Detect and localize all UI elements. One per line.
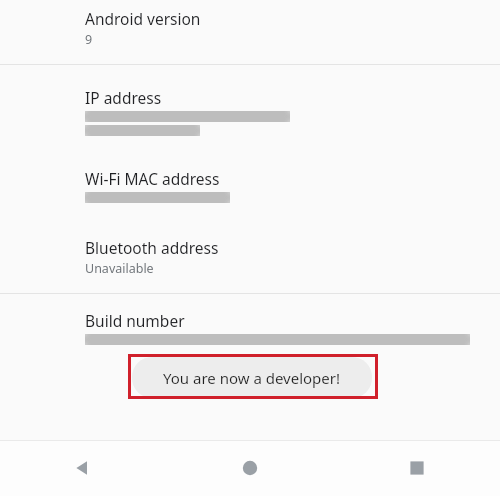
- staticText: IP address: [85, 87, 162, 108]
- staticText: You are now a developer!: [163, 368, 341, 388]
- staticText: Unavailable: [85, 260, 154, 277]
- staticText: Build number: [85, 310, 185, 331]
- button[interactable]: Home: [166, 440, 333, 496]
- button[interactable]: Recent apps: [333, 440, 500, 496]
- button[interactable]: Bluetooth address: [0, 219, 500, 293]
- button[interactable]: Back: [0, 440, 166, 496]
- staticText: Wi-Fi MAC address: [85, 168, 220, 189]
- button[interactable]: Wi-Fi MAC address: [0, 150, 500, 219]
- button[interactable]: Android version: [0, 0, 500, 64]
- staticText: Android version: [85, 8, 201, 29]
- button[interactable]: Build number: [0, 294, 500, 359]
- button[interactable]: IP address: [0, 65, 500, 150]
- staticText: Bluetooth address: [85, 237, 219, 258]
- staticText: 9: [85, 31, 93, 48]
